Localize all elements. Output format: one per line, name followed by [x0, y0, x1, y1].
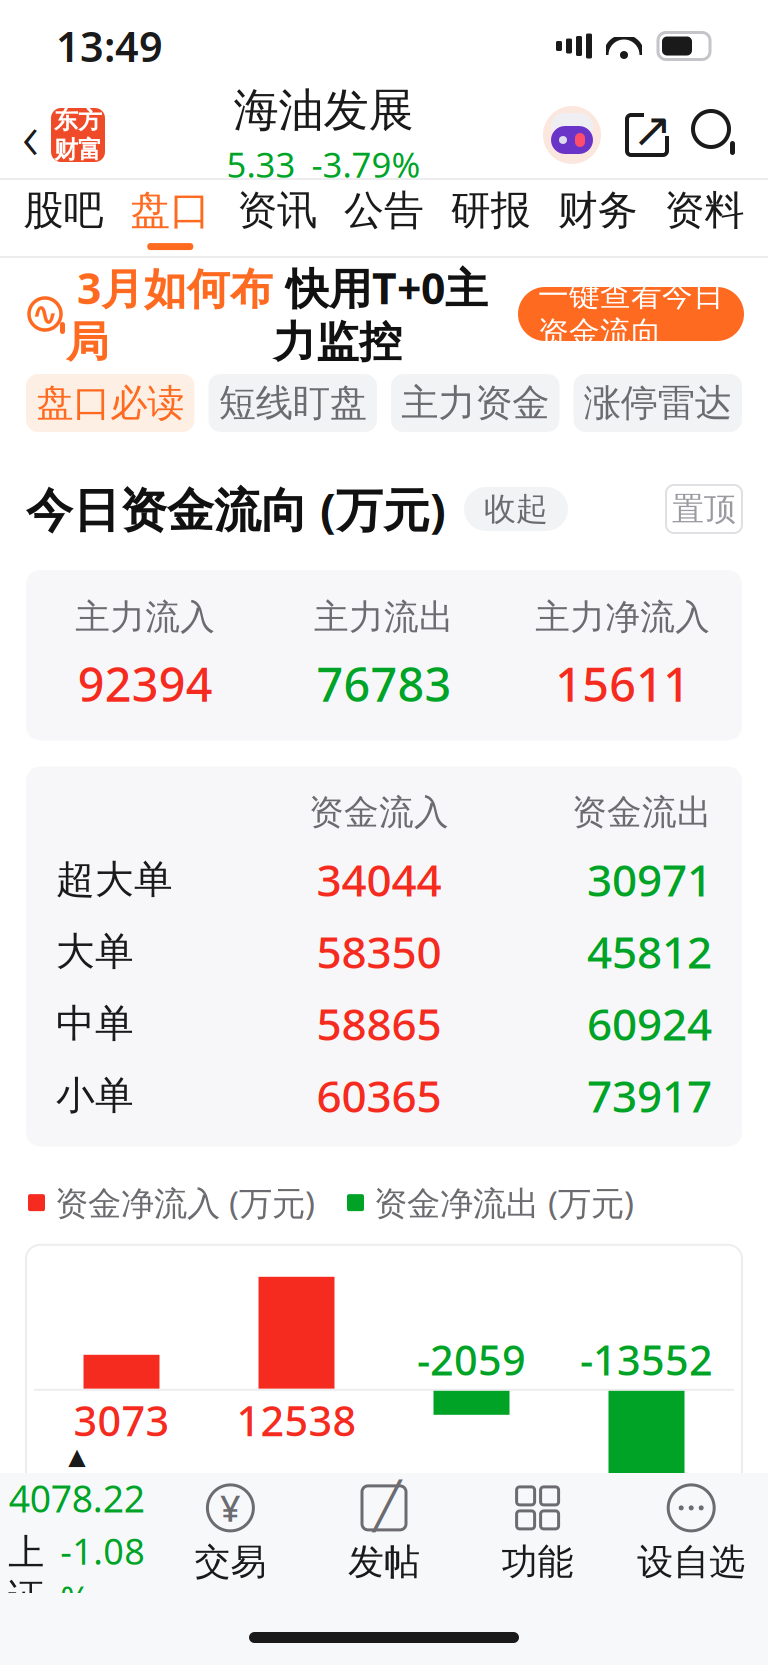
staticText: 资金流入 [309, 791, 449, 834]
staticText: 大单 [56, 928, 134, 975]
button[interactable]: 盘口必读 [26, 374, 194, 432]
staticText: 45812 [587, 922, 712, 981]
button[interactable]: 置顶 [666, 485, 742, 533]
staticText: 12538 [236, 1393, 356, 1448]
button[interactable]: 收起 [464, 487, 568, 531]
staticText: 34044 [316, 850, 441, 909]
staticText: 60924 [587, 994, 712, 1053]
button[interactable]: 公告 [331, 180, 437, 256]
staticText: 30971 [587, 850, 712, 909]
staticText: 4078.22 [9, 1473, 145, 1523]
button[interactable]: 财务 [544, 180, 651, 256]
staticText: 一键查看今日资金流向 [538, 276, 724, 352]
button[interactable]: 搜索 [692, 110, 742, 160]
button[interactable]: 短线盯盘 [208, 374, 377, 432]
staticText: 58865 [316, 994, 441, 1053]
staticText: 短线盯盘 [219, 380, 367, 426]
staticText: 交易 [194, 1540, 266, 1584]
staticText: 15611 [555, 653, 690, 715]
staticText: 主力资金 [401, 380, 549, 426]
button[interactable]: ▲ [0, 1473, 154, 1593]
staticText: 发帖 [348, 1540, 420, 1584]
staticText: 东方 [54, 105, 102, 135]
staticText: 76783 [316, 653, 451, 715]
staticText: 收起 [484, 489, 548, 529]
button[interactable]: 资料 [651, 180, 758, 256]
staticText: 资金流出 [572, 791, 712, 834]
staticText: 73917 [587, 1066, 712, 1125]
button[interactable]: 股吧 [10, 180, 117, 256]
staticText: 设自选 [637, 1540, 745, 1584]
staticText: ∿ [31, 296, 58, 332]
staticText: 60365 [316, 1066, 441, 1125]
staticText: 涨停雷达 [584, 380, 732, 426]
button[interactable]: ╱ [307, 1473, 461, 1593]
staticText: 92394 [78, 653, 213, 715]
staticText: 5.33 [226, 141, 295, 187]
staticText: 财务 [558, 186, 638, 235]
staticText: 主力净流入 [535, 596, 710, 639]
staticText: 功能 [502, 1540, 574, 1584]
staticText: 主力流出 [314, 596, 454, 639]
button[interactable]: AI 助手 [542, 105, 602, 165]
staticText: 中单 [56, 1000, 134, 1047]
staticText: 资料 [665, 186, 745, 235]
staticText: 今日资金流向 (万元) [26, 478, 446, 540]
staticText: 海油发展 [233, 83, 413, 138]
staticText: 3073 [73, 1393, 169, 1448]
button[interactable]: 资讯 [224, 180, 331, 256]
staticText: ▲ [68, 1443, 85, 1469]
staticText: -3.79% [311, 141, 420, 187]
button[interactable]: 盘口 [117, 180, 224, 256]
staticText: 13:49 [56, 19, 163, 73]
staticText: 资金净流出 (万元) [364, 1180, 634, 1225]
staticText: 股吧 [23, 186, 103, 235]
staticText: 小单 [56, 1072, 134, 1119]
staticText: 研报 [451, 186, 531, 235]
button[interactable]: 功能 [461, 1473, 614, 1593]
button[interactable]: 主力资金 [391, 374, 559, 432]
staticText: 净小单 [592, 1513, 700, 1557]
staticText: 净中单 [417, 1513, 525, 1557]
staticText: 超大单 [56, 856, 173, 903]
staticText: ╱ [373, 1480, 400, 1532]
staticText: 盘口必读 [36, 380, 184, 426]
staticText: ↗ [632, 103, 672, 157]
staticText: 财富 [54, 135, 102, 164]
staticText: 资金净流入 (万元) [45, 1180, 315, 1225]
staticText: 快用T+0主力监控 [273, 259, 488, 369]
button[interactable]: ∿ [0, 258, 768, 370]
staticText: -1.08% [60, 1527, 145, 1622]
staticText: 资讯 [237, 186, 317, 235]
button[interactable]: 返回 [0, 92, 105, 178]
staticText: 置顶 [672, 489, 736, 529]
staticText: 58350 [316, 922, 441, 981]
button[interactable]: 涨停雷达 [573, 374, 742, 432]
staticText: 主力流入 [75, 596, 215, 639]
staticText: ‹ [22, 92, 39, 177]
staticText: -2059 [417, 1332, 526, 1387]
staticText: ¥ [220, 1484, 241, 1532]
staticText: 净大单 [242, 1513, 350, 1557]
button[interactable]: 分享 [622, 110, 672, 160]
button[interactable]: 研报 [437, 180, 544, 256]
staticText: 公告 [344, 186, 424, 235]
button[interactable]: 设自选 [614, 1473, 768, 1593]
staticText: 净超大 [67, 1513, 175, 1557]
button[interactable]: ¥ [154, 1473, 307, 1593]
staticText: 3月如何布局 [66, 259, 273, 369]
staticText: -13552 [580, 1332, 713, 1387]
staticText: 盘口 [130, 186, 210, 235]
staticText: 上证 [8, 1530, 44, 1619]
